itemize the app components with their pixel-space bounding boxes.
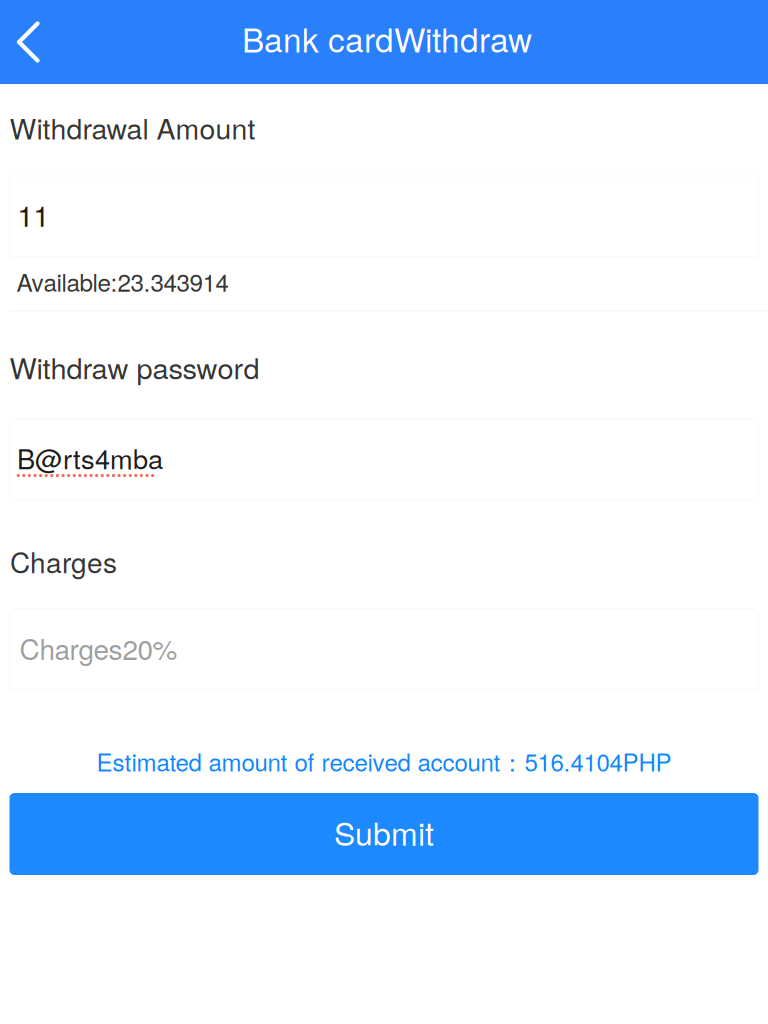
staticText: Estimated amount of received account：516… xyxy=(96,744,671,779)
staticText: 11 xyxy=(17,193,49,235)
staticText: Bank cardWithdraw xyxy=(242,14,532,62)
staticText: Charges20% xyxy=(19,628,177,668)
staticText: B@rts4mba xyxy=(17,438,163,477)
button[interactable]: 11 xyxy=(9,176,758,257)
staticText: Charges xyxy=(10,541,117,581)
staticText: Withdraw password xyxy=(9,346,259,387)
staticText: Withdrawal Amount xyxy=(9,107,255,148)
staticText: Available:23.343914 xyxy=(16,264,228,299)
button[interactable]: B@rts4mba xyxy=(9,419,758,500)
button[interactable]: Submit xyxy=(9,793,758,875)
staticText: Submit xyxy=(334,809,434,855)
button[interactable]: Back xyxy=(0,0,58,84)
button[interactable]: Charges20% xyxy=(9,609,758,690)
